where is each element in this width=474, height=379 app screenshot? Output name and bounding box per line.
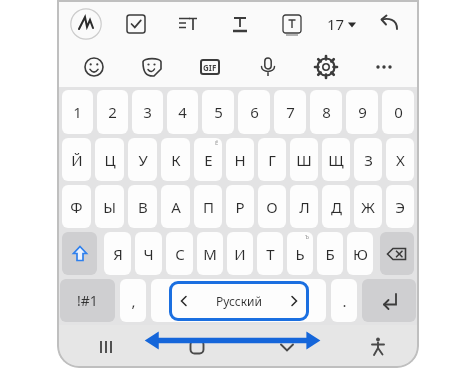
- staticText: П: [203, 197, 214, 217]
- staticText: С: [175, 244, 185, 264]
- button[interactable]: ,: [120, 279, 146, 322]
- staticText: .: [342, 291, 347, 311]
- button[interactable]: С: [166, 232, 193, 275]
- button[interactable]: Э: [386, 185, 414, 228]
- staticText: ,: [131, 291, 136, 311]
- button[interactable]: Text box: [277, 9, 307, 39]
- staticText: 4: [178, 102, 187, 122]
- button[interactable]: Paragraph style: [173, 9, 203, 39]
- button[interactable]: В: [128, 185, 157, 228]
- staticText: 8: [322, 102, 331, 122]
- staticText: Г: [268, 150, 276, 170]
- button[interactable]: П: [194, 185, 222, 228]
- button[interactable]: Shift: [62, 232, 97, 275]
- staticText: !#1: [77, 291, 98, 310]
- button[interactable]: 9: [346, 90, 378, 134]
- button[interactable]: GIF: [195, 52, 225, 82]
- button[interactable]: Т: [257, 232, 283, 275]
- button[interactable]: Undo: [374, 9, 404, 39]
- button[interactable]: А: [161, 185, 190, 228]
- button[interactable]: 5: [202, 90, 234, 134]
- staticText: Э: [395, 197, 405, 217]
- button[interactable]: М: [197, 232, 223, 275]
- button[interactable]: Ю: [347, 232, 373, 275]
- staticText: И: [234, 244, 246, 264]
- staticText: Н: [234, 150, 246, 170]
- button[interactable]: Ж: [354, 185, 382, 228]
- staticText: Ш: [296, 150, 312, 170]
- staticText: Я: [113, 244, 123, 264]
- button[interactable]: Л: [290, 185, 318, 228]
- button[interactable]: Щ: [322, 138, 350, 181]
- button[interactable]: Я: [104, 232, 131, 275]
- button[interactable]: Settings: [311, 52, 341, 82]
- button[interactable]: 17: [323, 10, 360, 38]
- button[interactable]: Home: [182, 332, 212, 362]
- button[interactable]: Б: [317, 232, 343, 275]
- button[interactable]: Backspace: [380, 232, 414, 275]
- staticText: З: [364, 150, 373, 170]
- staticText: Д: [331, 197, 342, 217]
- staticText: Е: [204, 150, 213, 170]
- staticText: Русский: [216, 293, 262, 309]
- button[interactable]: Е: [194, 138, 222, 181]
- button[interactable]: Enter: [362, 279, 416, 322]
- button[interactable]: Ф: [62, 185, 91, 228]
- button[interactable]: Stickers: [137, 52, 167, 82]
- button[interactable]: !#1: [60, 279, 115, 322]
- staticText: Ф: [70, 197, 83, 217]
- staticText: Ч: [143, 244, 154, 264]
- button[interactable]: 0: [382, 90, 414, 134]
- button[interactable]: Г: [258, 138, 286, 181]
- staticText: У: [138, 150, 148, 170]
- button[interactable]: Ы: [95, 185, 124, 228]
- button[interactable]: К: [161, 138, 190, 181]
- button[interactable]: 7: [274, 90, 306, 134]
- staticText: Ю: [353, 244, 368, 264]
- button[interactable]: Recent apps: [91, 332, 121, 362]
- staticText: 6: [250, 102, 259, 122]
- staticText: 3: [143, 102, 152, 122]
- staticText: А: [171, 197, 181, 217]
- button[interactable]: .: [331, 279, 357, 322]
- button[interactable]: Русский: [151, 279, 326, 322]
- button[interactable]: 4: [167, 90, 198, 134]
- button[interactable]: Text style: [225, 9, 255, 39]
- staticText: О: [266, 197, 278, 217]
- button[interactable]: Й: [62, 138, 91, 181]
- staticText: Б: [325, 244, 335, 264]
- button[interactable]: 6: [238, 90, 270, 134]
- staticText: Ы: [103, 197, 116, 217]
- staticText: Ё: [215, 139, 219, 147]
- button[interactable]: Checklist: [121, 9, 151, 39]
- button[interactable]: З: [354, 138, 382, 181]
- button[interactable]: 2: [97, 90, 128, 134]
- button[interactable]: Х: [386, 138, 414, 181]
- staticText: 2: [108, 102, 117, 122]
- staticText: 7: [286, 102, 295, 122]
- button[interactable]: 3: [132, 90, 163, 134]
- staticText: В: [138, 197, 148, 217]
- button[interactable]: Д: [322, 185, 350, 228]
- button[interactable]: У: [128, 138, 157, 181]
- button[interactable]: Н: [226, 138, 254, 181]
- staticText: Ц: [104, 150, 116, 170]
- button[interactable]: Ь: [287, 232, 313, 275]
- staticText: 0: [394, 102, 403, 122]
- button[interactable]: More options: [369, 52, 399, 82]
- button[interactable]: Hide keyboard: [272, 332, 302, 362]
- button[interactable]: Ч: [135, 232, 162, 275]
- button[interactable]: 1: [62, 90, 93, 134]
- button[interactable]: И: [227, 232, 253, 275]
- button[interactable]: Voice input: [253, 52, 283, 82]
- button[interactable]: Р: [226, 185, 254, 228]
- button[interactable]: 8: [310, 90, 342, 134]
- button[interactable]: О: [258, 185, 286, 228]
- staticText: Ъ: [305, 233, 310, 241]
- button[interactable]: Ц: [95, 138, 124, 181]
- staticText: Х: [396, 150, 405, 170]
- button[interactable]: Ш: [290, 138, 318, 181]
- button[interactable]: Emoji: [79, 52, 109, 82]
- button[interactable]: Accessibility: [363, 332, 393, 362]
- button[interactable]: Handwriting: [67, 5, 105, 43]
